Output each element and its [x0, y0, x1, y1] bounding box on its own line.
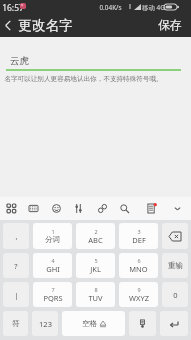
button[interactable]: Clipboard: [93, 199, 111, 217]
staticText: |: [14, 290, 19, 300]
staticText: 5: [94, 257, 98, 264]
button[interactable]: 8: [76, 282, 115, 307]
staticText: 符: [12, 319, 20, 328]
staticText: 3: [137, 228, 141, 235]
button[interactable]: 7: [33, 282, 72, 307]
button[interactable]: 4: [33, 253, 72, 278]
staticText: 7: [51, 286, 55, 293]
staticText: 重输: [168, 261, 183, 270]
button[interactable]: [160, 311, 188, 336]
staticText: 0: [173, 290, 178, 300]
button[interactable]: Notes: [142, 199, 160, 217]
staticText: 16:57: [2, 2, 24, 14]
button[interactable]: 3: [119, 223, 158, 249]
button[interactable]: Keyboard: [24, 199, 42, 217]
button[interactable]: ,: [3, 223, 29, 249]
staticText: 4: [51, 257, 55, 264]
button[interactable]: 2: [76, 223, 115, 249]
button[interactable]: 5: [76, 253, 115, 278]
button[interactable]: Back: [0, 13, 17, 37]
staticText: ?: [14, 261, 18, 271]
staticText: ABC: [88, 235, 103, 245]
staticText: 2: [94, 228, 98, 235]
staticText: WXYZ: [129, 293, 149, 303]
staticText: GHI: [46, 264, 60, 274]
button[interactable]: 重输: [162, 253, 188, 278]
button[interactable]: |: [3, 282, 29, 307]
staticText: 0.04K/s: [99, 3, 122, 12]
staticText: 分词: [45, 235, 60, 244]
button[interactable]: 云虎: [10, 55, 29, 67]
staticText: 123: [39, 319, 52, 329]
button[interactable]: Apps: [2, 199, 20, 217]
button[interactable]: Voice input: [69, 199, 87, 217]
staticText: 9: [137, 286, 141, 293]
staticText: 6: [137, 257, 141, 264]
staticText: 保存: [158, 18, 182, 33]
button[interactable]: 保存: [158, 13, 182, 37]
staticText: 云虎: [10, 55, 29, 67]
staticText: 1: [51, 228, 55, 235]
button[interactable]: 9: [119, 282, 158, 307]
button[interactable]: 符: [3, 311, 28, 336]
button[interactable]: ?: [3, 253, 29, 278]
button[interactable]: 123: [32, 311, 58, 336]
button[interactable]: 1: [33, 223, 72, 249]
staticText: 空格: [82, 319, 97, 328]
staticText: MNO: [129, 264, 148, 274]
button[interactable]: 空格: [62, 311, 125, 336]
staticText: PQRS: [43, 293, 63, 303]
button[interactable]: Search: [115, 199, 133, 217]
staticText: DEF: [132, 235, 146, 245]
button[interactable]: Emoji: [47, 199, 65, 217]
staticText: 移动 4G: [142, 3, 165, 12]
button[interactable]: [129, 311, 156, 336]
staticText: ,: [15, 231, 18, 241]
staticText: 8: [94, 286, 98, 293]
staticText: 名字可以让别人更容易地认出你，不支持特殊符号哦。: [4, 75, 163, 83]
button[interactable]: Collapse keyboard: [168, 199, 186, 217]
button[interactable]: [162, 223, 188, 249]
staticText: 更改名字: [18, 17, 73, 34]
staticText: JKL: [90, 264, 101, 274]
staticText: TUV: [88, 293, 103, 303]
button[interactable]: 0: [162, 282, 188, 307]
button[interactable]: 6: [119, 253, 158, 278]
